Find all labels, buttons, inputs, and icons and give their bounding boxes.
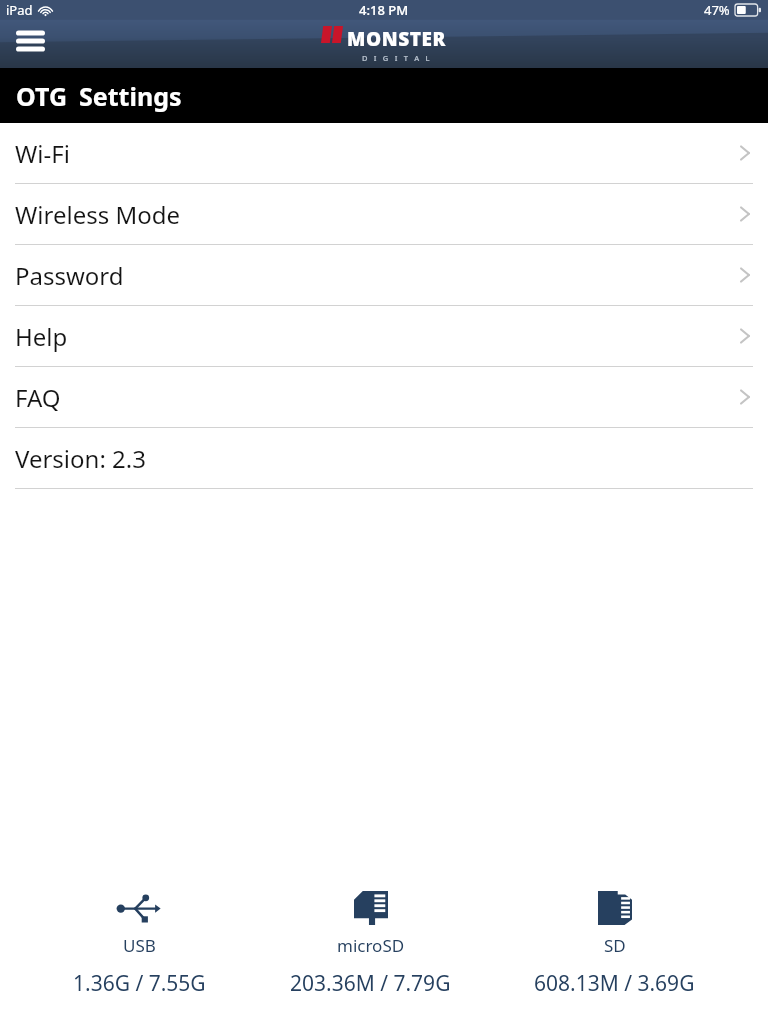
button[interactable]: USB [63,886,216,1002]
staticText: OTG [16,79,68,113]
staticText: 1.36G / 7.55G [73,969,206,998]
staticText: 4:18 PM [359,1,409,19]
staticText: USB [123,934,156,957]
staticText: Help [15,320,68,353]
button[interactable]: Wireless Mode [0,184,768,244]
staticText: Password [15,259,124,292]
staticText: MONSTER [347,26,447,52]
staticText: microSD [337,934,405,957]
button[interactable]: Menu [10,24,54,58]
staticText: FAQ [15,381,61,414]
button[interactable]: FAQ [0,367,768,427]
staticText: Settings [79,79,182,113]
button[interactable]: Wi-Fi [0,123,768,183]
staticText: 47% [704,1,730,19]
button[interactable]: Password [0,245,768,305]
staticText: Wireless Mode [15,198,181,231]
staticText: Version: 2.3 [15,442,146,475]
staticText: D I G I T A L [362,53,432,63]
button[interactable]: SD [524,886,705,1002]
staticText: Wi-Fi [15,137,70,170]
staticText: iPad [6,1,33,19]
staticText: 608.13M / 3.69G [534,969,695,998]
staticText: SD [604,934,626,957]
button[interactable]: Version: 2.3 [0,428,768,488]
button[interactable]: Help [0,306,768,366]
button[interactable]: microSD [280,886,461,1002]
staticText: 203.36M / 7.79G [290,969,451,998]
